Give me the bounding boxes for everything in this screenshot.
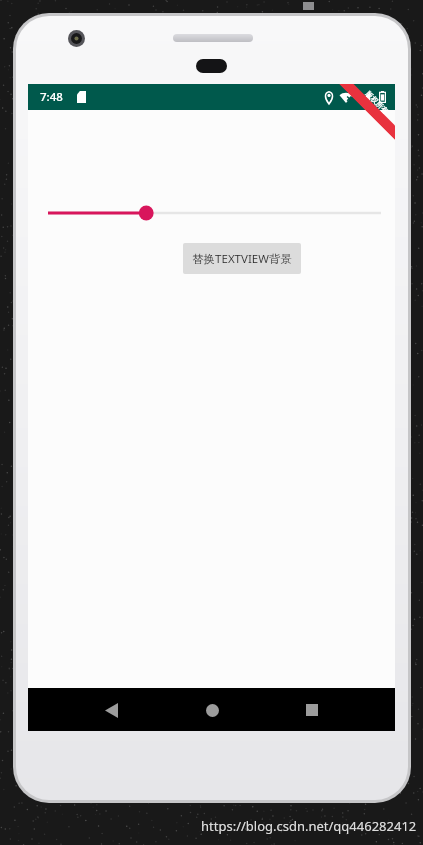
staticText: 版权所有	[364, 89, 390, 116]
button[interactable]: 替换TEXTVIEW背景	[183, 243, 301, 274]
button[interactable]: Slider	[28, 194, 395, 232]
button[interactable]: Recent apps	[294, 692, 330, 728]
button[interactable]: Back	[93, 692, 129, 728]
staticText: 替换TEXTVIEW背景	[192, 251, 292, 267]
staticText: https://blog.csdn.net/qq446282412	[201, 817, 417, 835]
button[interactable]: Home	[194, 692, 230, 728]
staticText: 7:48	[40, 89, 63, 105]
